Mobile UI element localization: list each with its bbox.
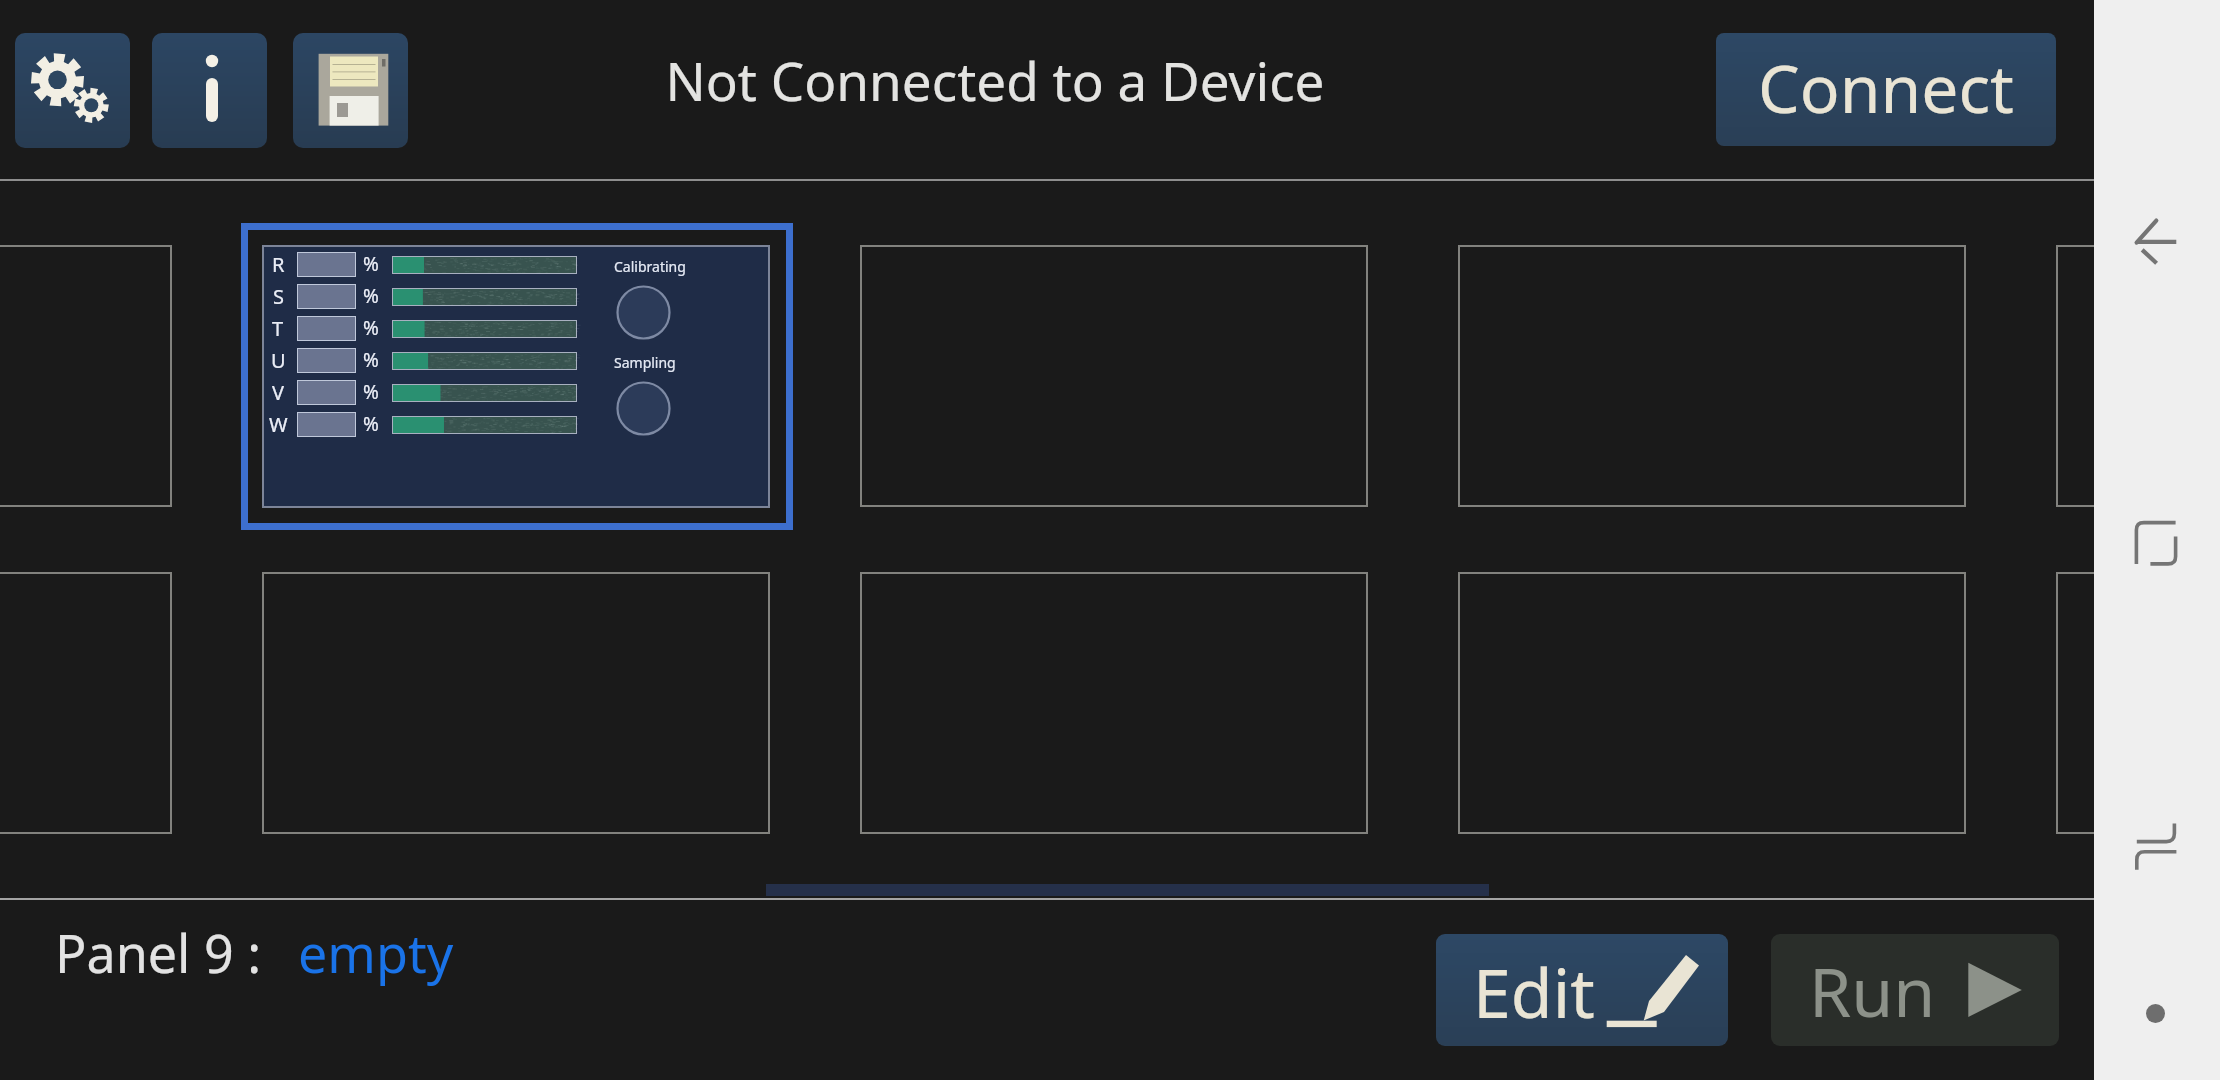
staticText: Panel 9 : — [55, 917, 262, 988]
staticText: U — [271, 347, 286, 374]
staticText: Edit — [1473, 945, 1595, 1038]
staticText: S — [273, 283, 284, 310]
button[interactable]: Run — [1771, 934, 2059, 1046]
button[interactable] — [2056, 245, 2220, 507]
staticText: T — [272, 315, 284, 342]
button[interactable]: Calibrating indicator — [615, 284, 672, 341]
staticText: W — [269, 411, 288, 438]
button[interactable]: Home — [2122, 505, 2192, 583]
staticText: % — [363, 283, 379, 309]
button[interactable]: Edit — [1436, 934, 1728, 1046]
staticText: Connect — [1758, 42, 2014, 132]
button[interactable]: Recents — [2122, 808, 2192, 886]
button[interactable]: Sampling indicator — [615, 380, 672, 437]
button[interactable] — [262, 572, 770, 834]
button[interactable]: Information — [152, 33, 267, 148]
button[interactable] — [0, 245, 172, 507]
staticText: empty — [298, 917, 454, 988]
staticText: Run — [1809, 944, 1936, 1037]
button[interactable] — [1458, 245, 1966, 507]
staticText: % — [363, 379, 379, 405]
staticText: Sampling — [614, 353, 676, 372]
staticText: V — [272, 379, 284, 406]
button[interactable] — [860, 245, 1368, 507]
staticText: % — [363, 411, 379, 437]
button[interactable] — [860, 572, 1368, 834]
button[interactable]: Connect — [1716, 33, 2056, 146]
button[interactable] — [1458, 572, 1966, 834]
staticText: Not Connected to a Device — [450, 44, 1540, 116]
button[interactable] — [2056, 572, 2220, 834]
button[interactable]: Back — [2122, 205, 2192, 280]
staticText: % — [363, 347, 379, 373]
button[interactable]: Save — [293, 33, 408, 148]
button[interactable] — [241, 223, 793, 530]
staticText: % — [363, 251, 379, 277]
button[interactable]: Settings — [15, 33, 130, 148]
button[interactable] — [0, 572, 172, 834]
staticText: % — [363, 315, 379, 341]
staticText: Calibrating — [614, 257, 686, 276]
staticText: R — [272, 251, 285, 278]
